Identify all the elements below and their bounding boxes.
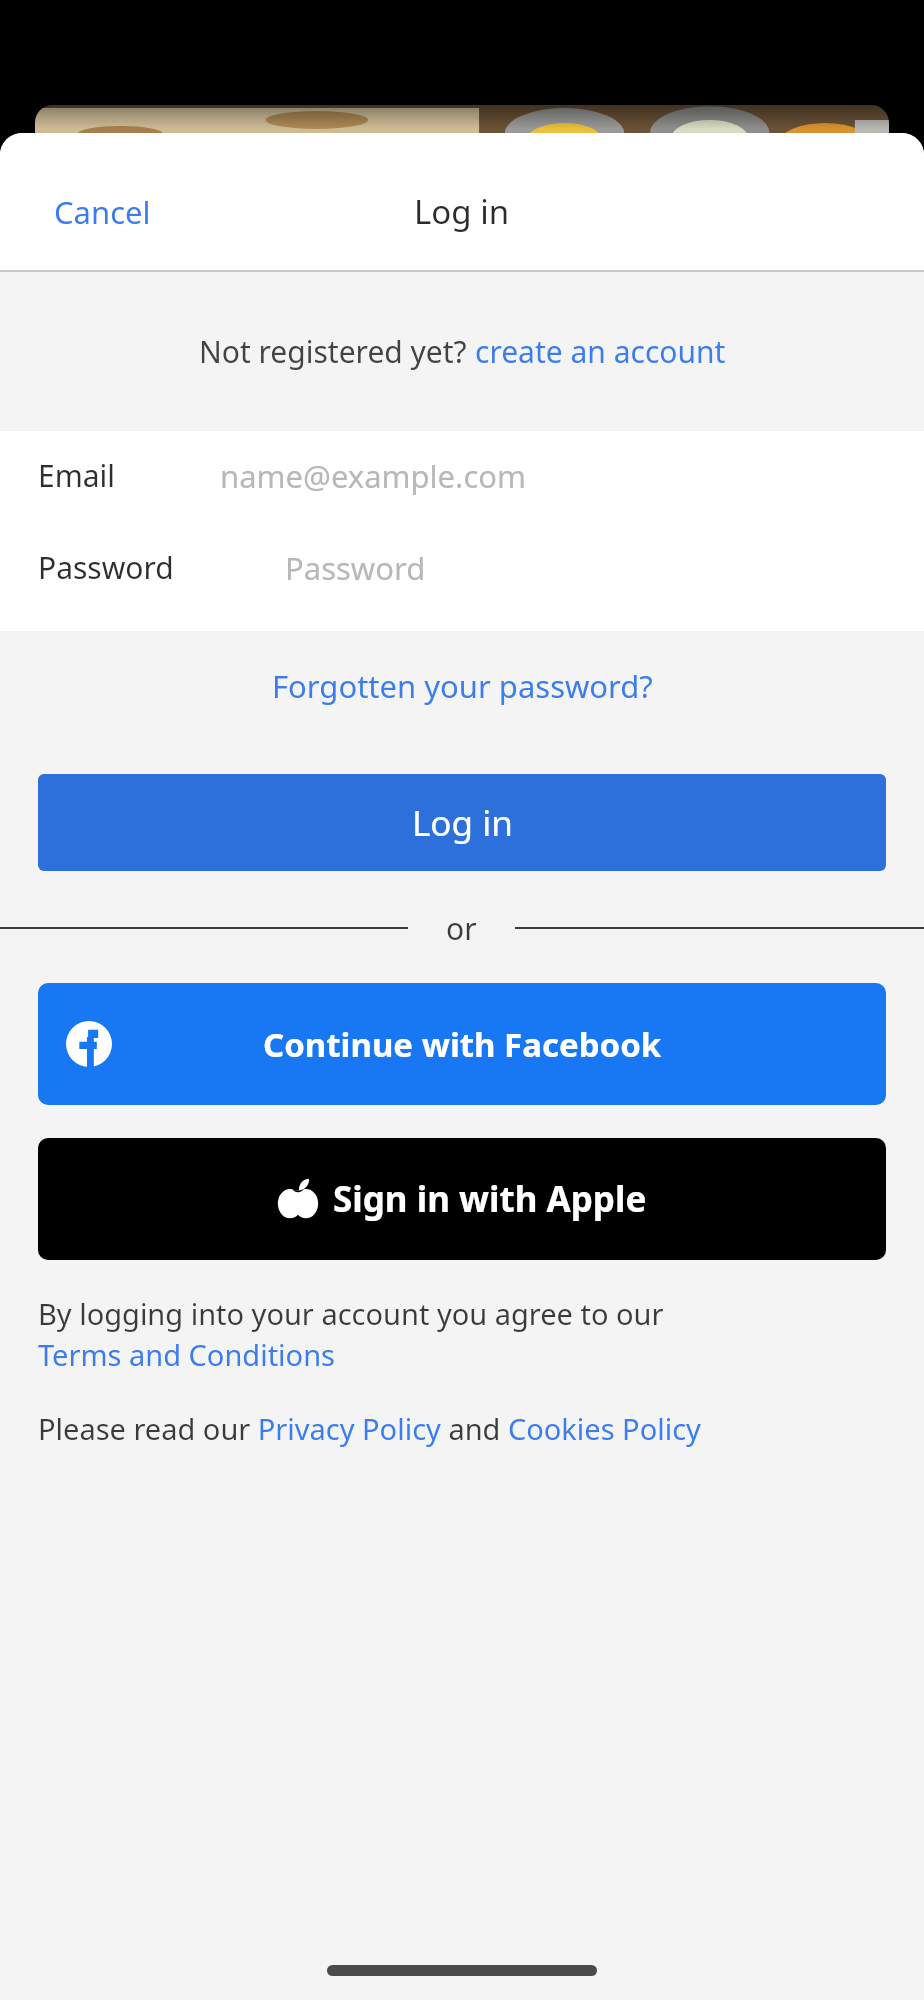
staticText: Log in: [412, 799, 513, 847]
button[interactable]: Apple: [38, 1138, 886, 1260]
other: Apple: [277, 1178, 319, 1220]
button[interactable]: Log in: [38, 774, 886, 871]
button[interactable]: Cancel: [0, 179, 205, 245]
button[interactable]: Continue with Facebook: [38, 983, 886, 1105]
other: Facebook: [66, 1021, 112, 1067]
staticText: Password: [285, 547, 426, 589]
button[interactable]: Forgotten your password?: [252, 655, 673, 717]
button[interactable]: Please read our Privacy Policy and Cooki…: [38, 1409, 701, 1448]
staticText: Password: [38, 547, 174, 588]
staticText: Sign in with Apple: [333, 1175, 647, 1223]
staticText: create an account: [475, 331, 726, 372]
staticText: or: [446, 908, 477, 949]
staticText: Email: [38, 455, 116, 496]
staticText: name@example.com: [220, 455, 527, 497]
staticText: Forgotten your password?: [272, 665, 653, 707]
button[interactable]: Password: [0, 531, 924, 631]
staticText: Cancel: [54, 191, 151, 233]
button[interactable]: Not registered yet?: [183, 321, 742, 382]
button[interactable]: Email: [0, 431, 924, 531]
button[interactable]: By logging into your account you agree t…: [38, 1294, 664, 1375]
staticText: Not registered yet?: [199, 331, 475, 372]
staticText: Continue with Facebook: [263, 1022, 662, 1067]
staticText: Log in: [414, 189, 510, 234]
